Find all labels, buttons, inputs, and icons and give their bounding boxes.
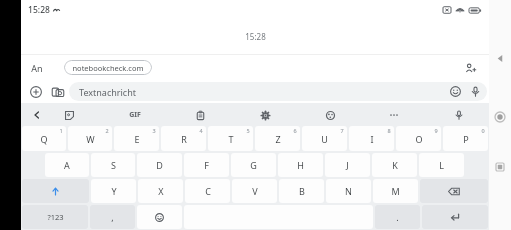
button[interactable]: Voice typing	[451, 107, 467, 123]
button[interactable]: Z	[255, 126, 300, 151]
staticText: 8	[387, 127, 391, 134]
button[interactable]: T	[208, 126, 253, 151]
staticText: 3	[152, 127, 156, 134]
staticText: K	[392, 159, 398, 171]
button[interactable]: Emoji	[450, 86, 461, 97]
staticText: J	[346, 159, 349, 171]
staticText: 15:28	[245, 31, 266, 42]
staticText: S	[111, 159, 116, 171]
staticText: U	[321, 133, 328, 145]
button[interactable]: H	[278, 153, 323, 177]
staticText: I	[370, 133, 374, 145]
button[interactable]: F	[184, 153, 229, 177]
staticText: P	[463, 133, 469, 145]
staticText: An	[31, 62, 43, 74]
staticText: 2	[105, 127, 109, 134]
button[interactable]: G	[231, 153, 276, 177]
staticText: G	[250, 159, 257, 171]
button[interactable]: Voice input	[470, 86, 481, 97]
button[interactable]: Q	[22, 126, 66, 151]
staticText: M	[391, 185, 400, 197]
staticText: W	[86, 133, 95, 145]
staticText: 4	[199, 127, 203, 134]
button[interactable]: Stickers	[61, 107, 77, 123]
button[interactable]: GIF	[126, 106, 144, 124]
button[interactable]: ?123	[22, 205, 88, 229]
staticText: Z	[275, 133, 281, 145]
button[interactable]: Recent apps	[490, 157, 510, 177]
button[interactable]: S	[91, 153, 135, 177]
staticText: notebookcheck.com	[72, 63, 144, 73]
button[interactable]: U	[302, 126, 347, 151]
button[interactable]: Attach	[26, 82, 45, 101]
staticText: C	[205, 185, 211, 197]
staticText: 7	[340, 127, 344, 134]
staticText: 5	[246, 127, 250, 134]
staticText: D	[156, 159, 163, 171]
button[interactable]: notebookcheck.com	[64, 60, 152, 75]
button[interactable]: Enter	[422, 205, 488, 229]
button[interactable]: X	[138, 179, 183, 203]
button[interactable]: Clipboard	[192, 107, 208, 123]
staticText: L	[439, 159, 444, 171]
button[interactable]: O	[396, 126, 441, 151]
staticText: 1	[59, 127, 63, 134]
button[interactable]: Shift	[22, 179, 89, 203]
button[interactable]: Backspace	[420, 179, 488, 203]
button[interactable]: M	[373, 179, 418, 203]
staticText: T	[228, 133, 234, 145]
staticText: .	[396, 211, 399, 223]
button[interactable]: W	[68, 126, 112, 151]
button[interactable]: Y	[91, 179, 136, 203]
staticText: GIF	[129, 110, 141, 120]
button[interactable]: L	[419, 153, 464, 177]
staticText: X	[158, 185, 164, 197]
staticText: E	[134, 133, 140, 145]
button[interactable]: D	[137, 153, 182, 177]
button[interactable]: Camera	[48, 82, 67, 101]
staticText: R	[181, 133, 187, 145]
staticText: ?123	[47, 212, 64, 222]
staticText: O	[415, 133, 423, 145]
button[interactable]: More options	[386, 107, 402, 123]
button[interactable]: E	[114, 126, 159, 151]
button[interactable]: ,	[90, 205, 135, 229]
staticText: 9	[434, 127, 438, 134]
staticText: A	[64, 159, 70, 171]
button[interactable]: Add person	[461, 59, 479, 77]
button[interactable]: I	[349, 126, 394, 151]
button[interactable]: P	[443, 126, 488, 151]
button[interactable]: .	[375, 205, 420, 229]
button[interactable]: N	[326, 179, 371, 203]
button[interactable]: Settings	[257, 107, 273, 123]
button[interactable]: Themes	[322, 107, 338, 123]
staticText: Q	[40, 133, 48, 145]
button[interactable]: Textnachricht	[69, 82, 487, 101]
button[interactable]: Emoji	[137, 205, 182, 229]
button[interactable]: Back	[29, 107, 45, 123]
button[interactable]: R	[161, 126, 206, 151]
staticText: B	[299, 185, 305, 197]
staticText: Y	[111, 185, 117, 197]
staticText: H	[297, 159, 304, 171]
button[interactable]: B	[279, 179, 324, 203]
staticText: V	[252, 185, 258, 197]
staticText: 0	[481, 127, 485, 134]
button[interactable]: Home	[490, 107, 510, 127]
staticText: 15:28	[28, 4, 50, 16]
staticText: F	[204, 159, 209, 171]
button[interactable]: K	[372, 153, 417, 177]
button[interactable]: Back	[490, 48, 510, 68]
button[interactable]: C	[185, 179, 230, 203]
staticText: N	[345, 185, 352, 197]
button[interactable]: V	[232, 179, 277, 203]
staticText: Textnachricht	[79, 86, 136, 98]
button[interactable]: A	[45, 153, 89, 177]
staticText: ,	[111, 211, 114, 223]
button[interactable]: J	[325, 153, 370, 177]
staticText: 6	[293, 127, 297, 134]
